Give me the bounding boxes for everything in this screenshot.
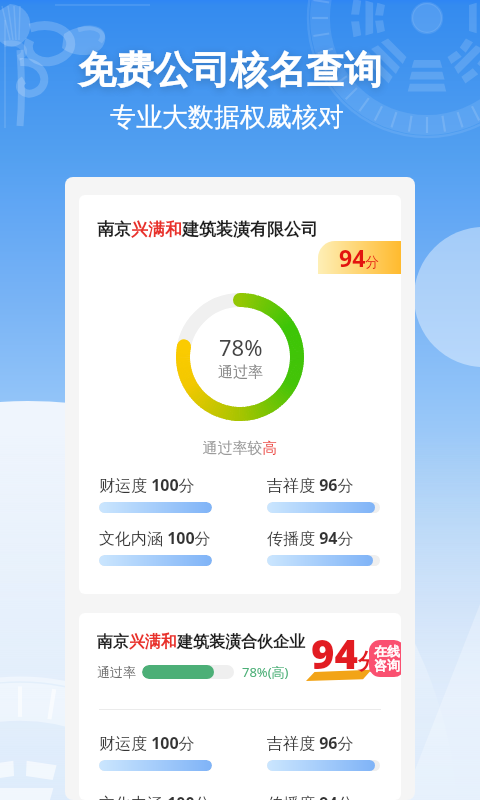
staticText: 文化内涵 100分 bbox=[99, 527, 211, 549]
staticText: 78% bbox=[219, 332, 263, 362]
staticText: 94分 bbox=[311, 626, 380, 680]
staticText: 传播度 94分 bbox=[267, 527, 354, 549]
staticText: 文化内涵 100分 bbox=[99, 792, 211, 800]
button[interactable]: 94分 bbox=[318, 241, 401, 274]
staticText: 吉祥度 96分 bbox=[267, 732, 354, 754]
staticText: 吉祥度 96分 bbox=[267, 474, 354, 496]
staticText: 通过率较高 bbox=[79, 439, 401, 458]
button[interactable]: 在线 咨询 bbox=[369, 640, 401, 677]
staticText: 南京兴满和建筑装潢有限公司 bbox=[97, 219, 318, 240]
staticText: 专业大数据权威核对 bbox=[0, 101, 467, 134]
staticText: 南京兴满和建筑装潢合伙企业 bbox=[97, 632, 305, 652]
staticText: 94分 bbox=[339, 242, 380, 273]
staticText: 传播度 94分 bbox=[267, 792, 354, 800]
staticText: 78%(高) bbox=[242, 663, 289, 681]
staticText: 通过率 bbox=[218, 363, 263, 382]
staticText: 财运度 100分 bbox=[99, 474, 195, 496]
staticText: 免费公司核名查询 bbox=[0, 46, 470, 94]
staticText: 在线 咨询 bbox=[374, 643, 400, 674]
staticText: 财运度 100分 bbox=[99, 732, 195, 754]
staticText: 通过率 bbox=[97, 664, 136, 680]
